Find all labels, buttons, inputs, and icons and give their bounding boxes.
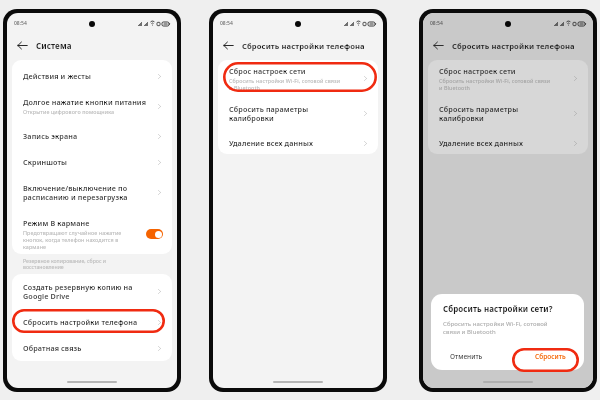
button[interactable]: Включение/выключение по расписанию и пер… bbox=[12, 175, 172, 210]
button[interactable]: Обратная связь bbox=[12, 335, 172, 361]
button[interactable]: Сбросить параметры калибровки bbox=[218, 97, 378, 130]
button[interactable]: Back bbox=[16, 39, 29, 52]
staticText: Система bbox=[36, 40, 72, 51]
staticText: Удаление всех данных bbox=[229, 138, 314, 148]
button[interactable]: Сбросить настройки телефона bbox=[12, 309, 172, 335]
staticText: Сбросить настройки Wi-Fi, сотовой связи … bbox=[443, 320, 556, 336]
staticText: 08:54 bbox=[430, 20, 443, 27]
button[interactable]: Сброс настроек сети bbox=[218, 60, 378, 97]
staticText: Режим В кармане bbox=[23, 218, 90, 228]
staticText: Сброс настроек сети bbox=[439, 66, 516, 76]
button[interactable]: Действия и жесты bbox=[12, 63, 172, 89]
button[interactable]: Сбросить bbox=[526, 349, 575, 364]
staticText: Включение/выключение по расписанию и пер… bbox=[23, 183, 135, 202]
button[interactable]: Удаление всех данных bbox=[428, 130, 588, 154]
staticText: 08:54 bbox=[14, 20, 27, 27]
staticText: Удаление всех данных bbox=[439, 138, 524, 148]
button[interactable]: Скриншоты bbox=[12, 149, 172, 175]
staticText: Сбросить параметры калибровки bbox=[229, 104, 319, 123]
staticText: Резервное копирование, сброс и восстанов… bbox=[23, 257, 135, 271]
staticText: Обратная связь bbox=[23, 343, 82, 353]
button[interactable]: Сброс настроек сети bbox=[428, 60, 588, 97]
button[interactable]: Долгое нажатие кнопки питания bbox=[12, 89, 172, 123]
staticText: Скриншоты bbox=[23, 157, 68, 167]
staticText: Сбросить настройки телефона bbox=[23, 317, 138, 327]
staticText: Сбросить параметры калибровки bbox=[439, 104, 529, 123]
staticText: Предотвращают случайное нажатие кнопок, … bbox=[23, 229, 123, 250]
staticText: Действия и жесты bbox=[23, 71, 91, 81]
staticText: Сбросить bbox=[535, 352, 566, 361]
button[interactable]: Удаление всех данных bbox=[218, 130, 378, 154]
button[interactable]: Back bbox=[432, 39, 445, 52]
button[interactable]: Создать резервную копию на Google Drive bbox=[12, 274, 172, 309]
staticText: Сбросить настройки телефона bbox=[242, 41, 365, 51]
staticText: Сброс настроек сети bbox=[229, 66, 306, 76]
button[interactable]: Back bbox=[222, 39, 235, 52]
staticText: Запись экрана bbox=[23, 131, 78, 141]
staticText: Долгое нажатие кнопки питания bbox=[23, 97, 147, 107]
button[interactable] bbox=[146, 229, 163, 239]
button[interactable]: Запись экрана bbox=[12, 123, 172, 149]
staticText: Сбросить настройки сети? bbox=[443, 304, 553, 315]
staticText: 08:54 bbox=[220, 20, 233, 27]
staticText: Сбросить настройки телефона bbox=[452, 41, 575, 51]
staticText: Создать резервную копию на Google Drive bbox=[23, 282, 135, 301]
button[interactable]: Отменить bbox=[443, 349, 490, 364]
staticText: Сбросить настройки Wi-Fi, сотовой связи … bbox=[439, 77, 552, 91]
staticText: Открытие цифрового помощника bbox=[23, 108, 115, 115]
staticText: Сбросить настройки Wi-Fi, сотовой связи … bbox=[229, 77, 342, 91]
button[interactable]: Сбросить параметры калибровки bbox=[428, 97, 588, 130]
button[interactable]: Режим В кармане bbox=[12, 210, 172, 254]
staticText: Отменить bbox=[450, 352, 483, 361]
